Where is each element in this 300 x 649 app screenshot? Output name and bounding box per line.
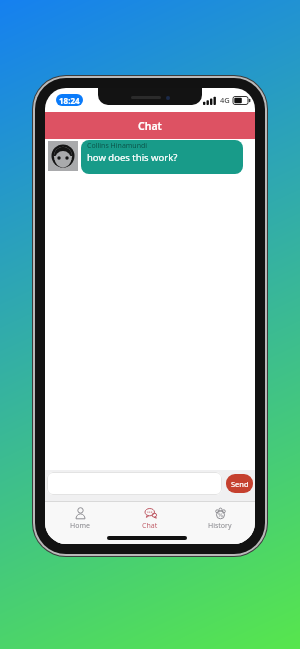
staticText: Collins Hinamundi <box>87 141 148 151</box>
button[interactable]: Send <box>226 474 253 493</box>
button[interactable] <box>47 472 222 495</box>
staticText: 4G <box>220 95 230 105</box>
staticText: 18:24 <box>59 95 80 106</box>
staticText: Chat <box>138 119 162 133</box>
staticText: Chat <box>142 521 158 531</box>
button[interactable]: Home <box>45 507 115 544</box>
staticText: History <box>208 521 232 531</box>
button[interactable]: Collins Hinamundi <box>81 140 243 174</box>
button[interactable]: Chat <box>45 112 255 139</box>
staticText: Home <box>70 521 90 531</box>
button[interactable]: History <box>185 507 255 544</box>
staticText: Send <box>231 479 249 489</box>
staticText: how does this work? <box>87 151 178 164</box>
button[interactable]: Chat <box>115 507 185 544</box>
